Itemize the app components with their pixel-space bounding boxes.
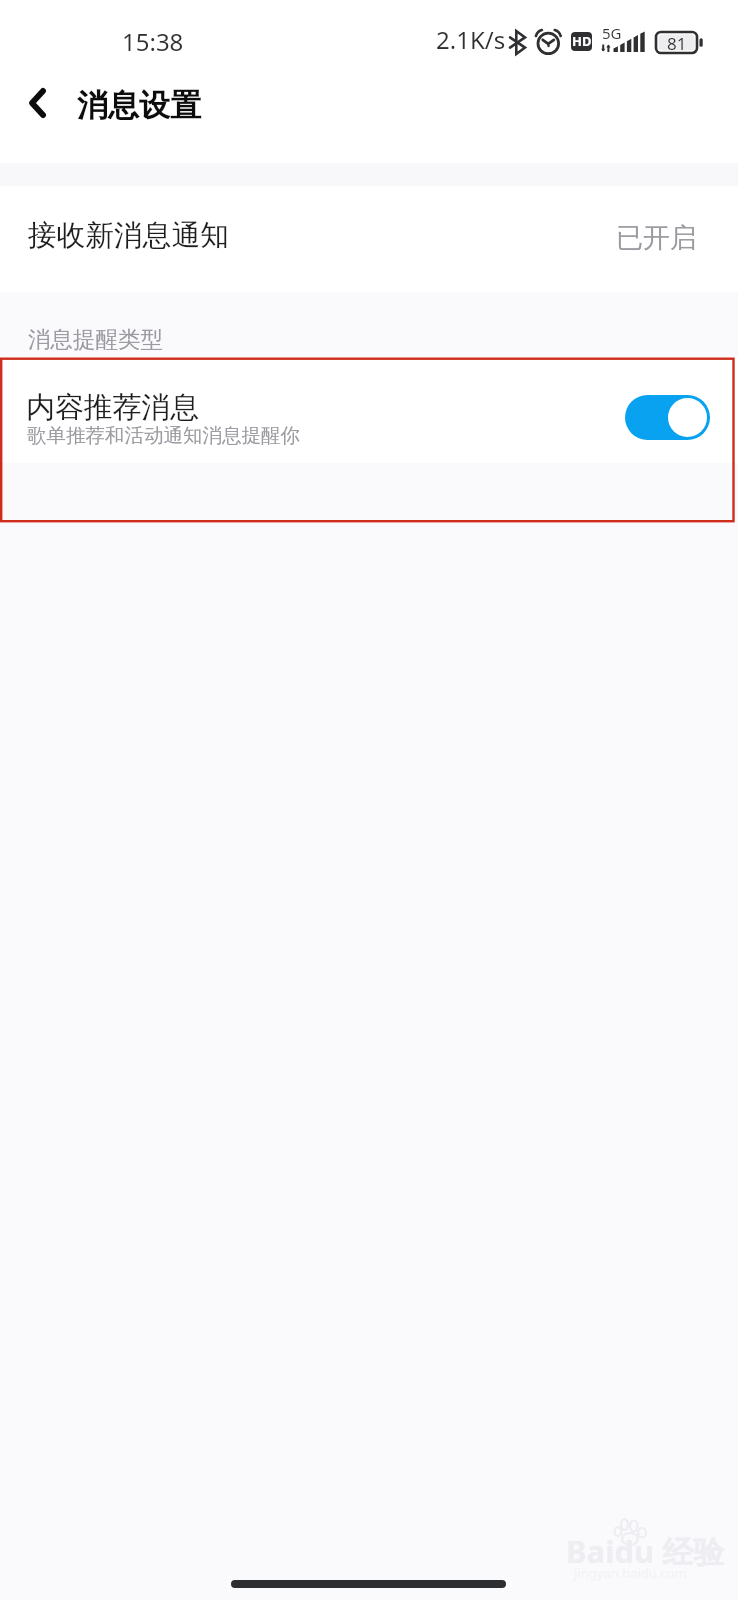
staticText: 15:38 (122, 25, 184, 58)
staticText: HD (572, 32, 592, 50)
staticText: 2.1K/s (436, 23, 506, 56)
staticText: 消息设置 (77, 86, 201, 125)
staticText: 5G (602, 23, 622, 43)
staticText: 内容推荐消息 (26, 389, 200, 425)
button[interactable]: 内容推荐消息 (0, 357, 738, 463)
staticText: 已开启 (616, 221, 697, 255)
staticText: 81 (667, 32, 687, 53)
staticText: 消息提醒类型 (28, 325, 163, 353)
button[interactable]: 返回 (5, 70, 71, 136)
button[interactable]: 接收新消息通知 (0, 186, 738, 292)
staticText: 接收新消息通知 (28, 217, 229, 253)
button[interactable]: 内容推荐消息 开关 (625, 395, 710, 440)
staticText: 歌单推荐和活动通知消息提醒你 (27, 423, 300, 448)
staticText: Baidu 经验 (566, 1530, 725, 1572)
